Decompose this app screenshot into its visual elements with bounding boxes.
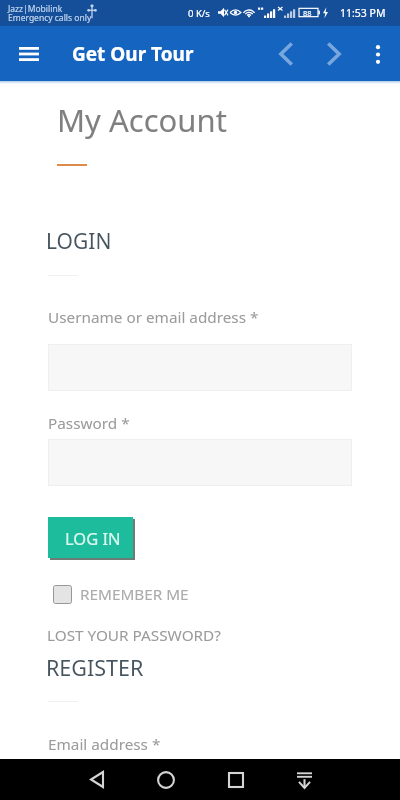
button[interactable]: Recent apps bbox=[215, 759, 256, 800]
button[interactable]: REMEMBER ME bbox=[53, 584, 189, 605]
staticText: Jazz|Mobilink bbox=[8, 3, 63, 15]
staticText: Emergency calls only bbox=[8, 12, 92, 24]
staticText: Get Our Tour bbox=[72, 41, 194, 67]
button[interactable]: More options bbox=[357, 33, 399, 75]
staticText: Email address * bbox=[48, 734, 161, 755]
button[interactable]: LOST YOUR PASSWORD? bbox=[47, 625, 221, 646]
staticText: LOG IN bbox=[65, 527, 121, 549]
staticText: 88 bbox=[303, 8, 312, 18]
staticText: REGISTER bbox=[46, 653, 144, 682]
button[interactable]: Home bbox=[145, 759, 186, 800]
button[interactable]: Back bbox=[262, 30, 310, 78]
staticText: Password * bbox=[48, 413, 130, 434]
button[interactable]: Open navigation menu bbox=[6, 31, 51, 76]
button[interactable]: Back bbox=[76, 759, 117, 800]
button[interactable]: LOG IN bbox=[48, 517, 133, 558]
staticText: Username or email address * bbox=[48, 307, 259, 328]
staticText: LOGIN bbox=[46, 227, 112, 256]
staticText: 11:53 PM bbox=[340, 6, 386, 20]
staticText: 0 K/s bbox=[188, 7, 210, 20]
staticText: REMEMBER ME bbox=[80, 584, 189, 605]
button[interactable]: Hide navigation bar bbox=[284, 759, 325, 800]
button[interactable]: Forward bbox=[310, 30, 358, 78]
staticText: My Account bbox=[57, 99, 227, 141]
